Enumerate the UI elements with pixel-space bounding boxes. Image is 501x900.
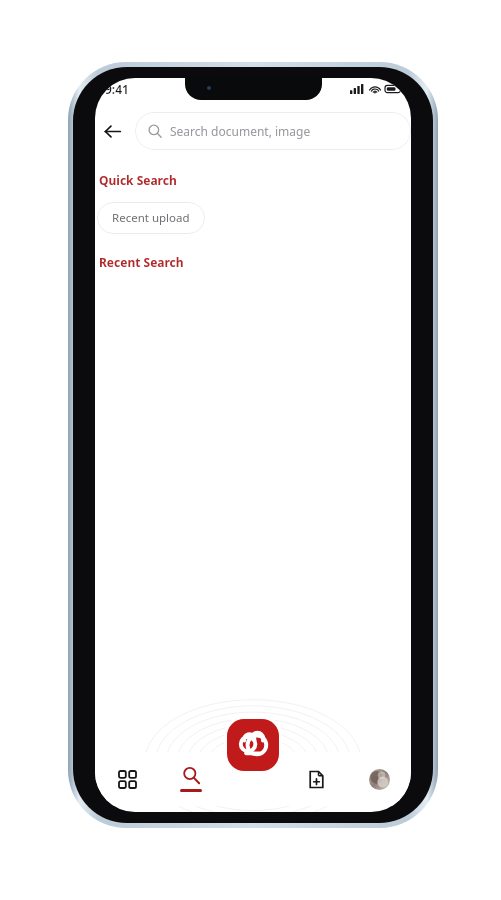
button[interactable]: Search: [159, 752, 222, 806]
staticText: Recent Search: [99, 254, 184, 270]
button[interactable]: Dashboard: [95, 752, 159, 806]
staticText: 9:41: [105, 81, 129, 97]
button[interactable]: Search document, image: [135, 112, 411, 150]
button[interactable]: Upload to cloud: [227, 719, 279, 771]
staticText: Quick Search: [99, 172, 177, 188]
staticText: Search document, image: [170, 123, 311, 139]
button[interactable]: Back: [95, 114, 129, 148]
staticText: Recent upload: [112, 210, 190, 226]
button[interactable]: Recent upload: [97, 202, 205, 234]
button[interactable]: Profile: [348, 752, 411, 806]
button[interactable]: New document: [285, 752, 348, 806]
